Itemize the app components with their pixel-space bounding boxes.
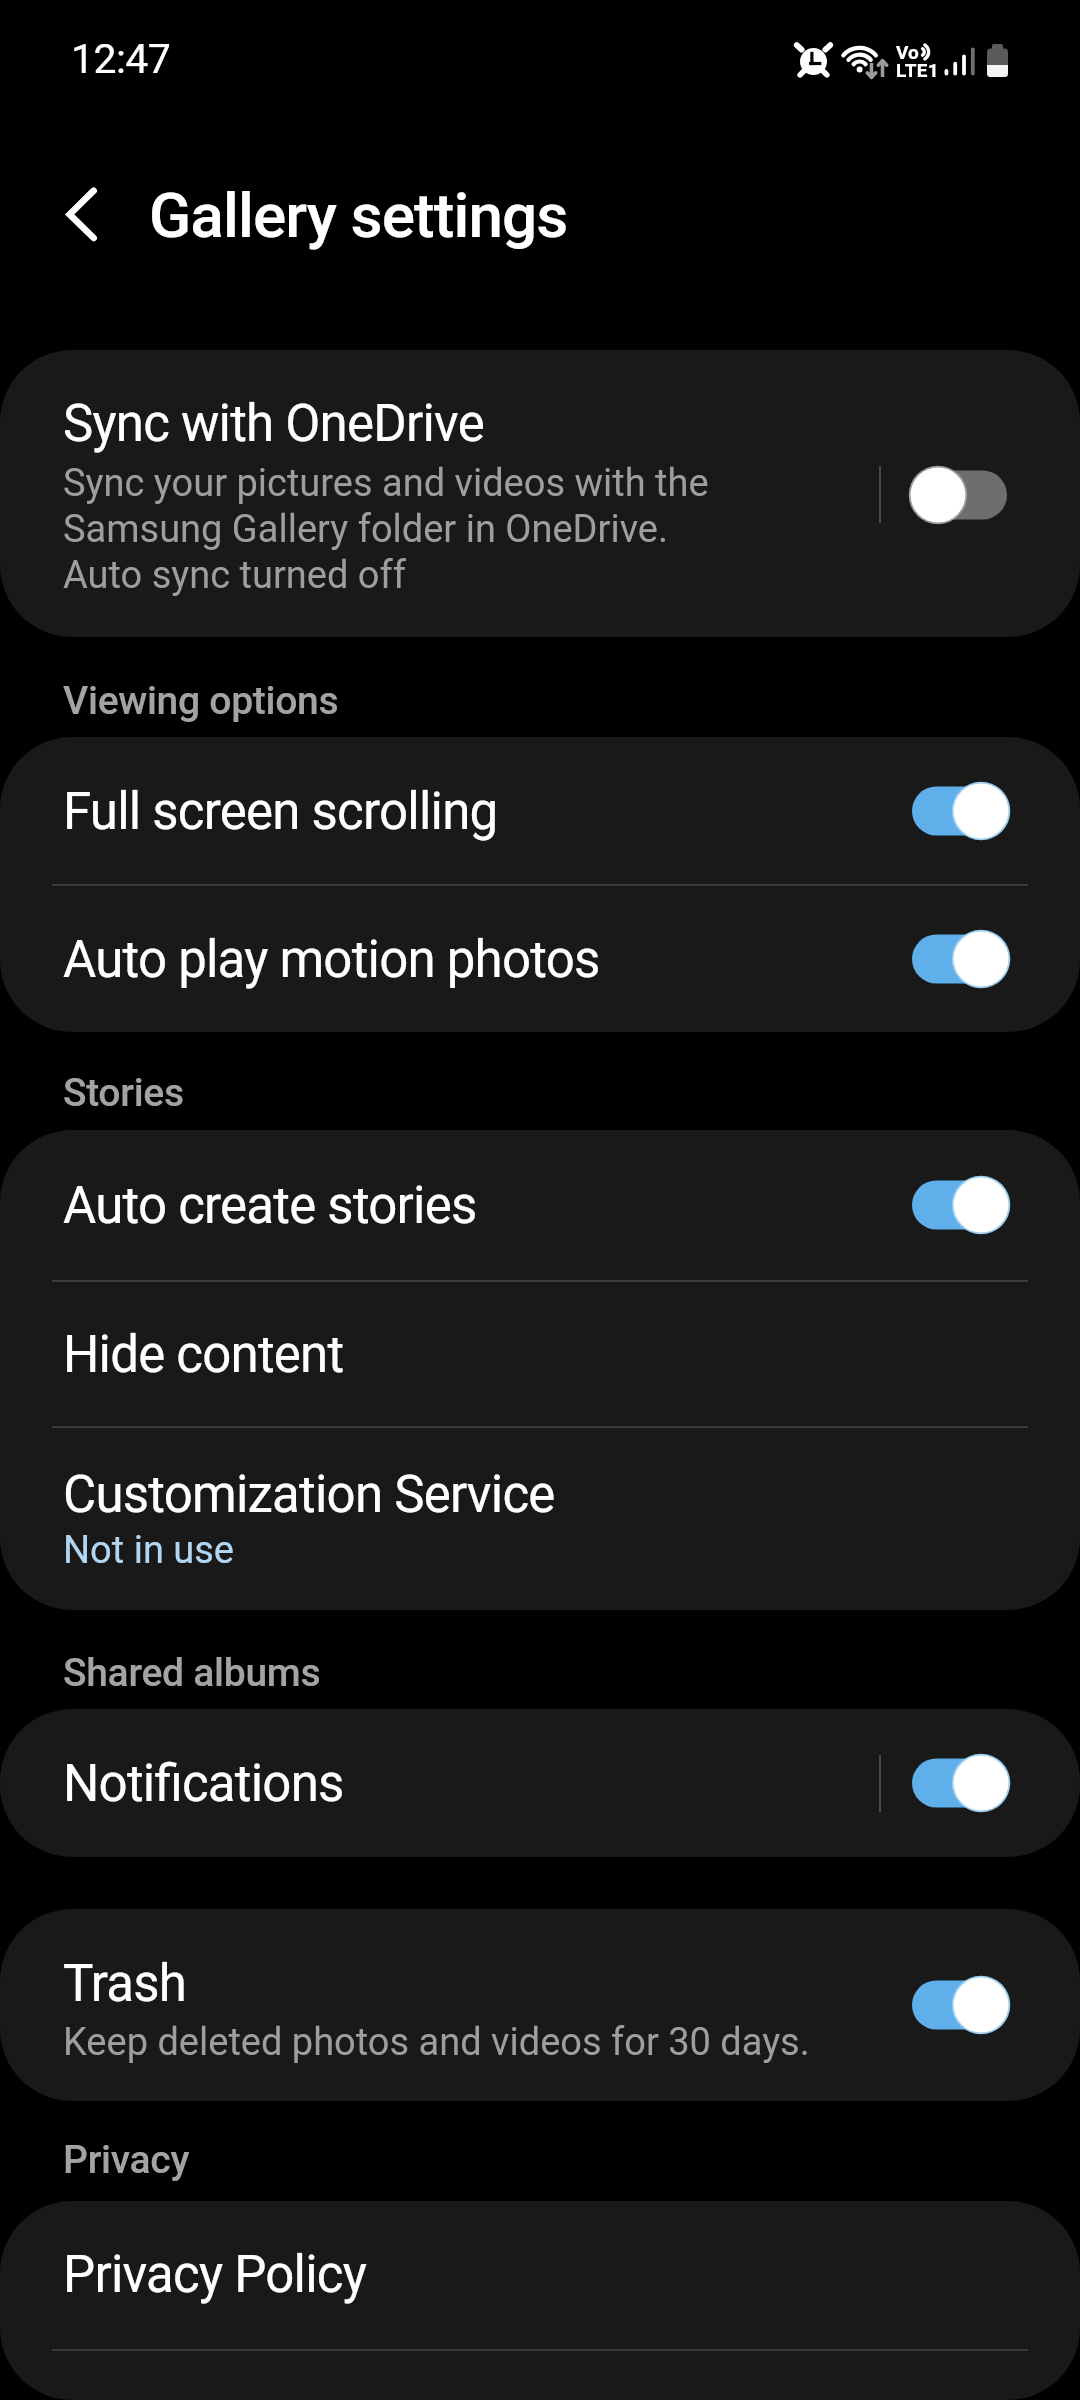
- button[interactable]: On: [901, 930, 1008, 988]
- button[interactable]: Navigate up: [36, 168, 128, 260]
- staticText: Privacy Policy: [63, 2245, 367, 2305]
- button[interactable]: Full screen scrolling: [0, 737, 1080, 884]
- staticText: Stories: [63, 1070, 184, 1116]
- staticText: Keep deleted photos and videos for 30 da…: [63, 2019, 810, 2065]
- staticText: LTE1: [896, 59, 939, 81]
- staticText: Auto create stories: [63, 1176, 477, 1236]
- staticText: Sync your pictures and videos with the S…: [63, 460, 709, 598]
- staticText: Trash: [63, 1954, 187, 2014]
- button[interactable]: Hide content: [0, 1281, 1080, 1427]
- staticText: Viewing options: [63, 678, 339, 724]
- button[interactable]: Trash: [0, 1909, 1080, 2101]
- button[interactable]: Off: [901, 466, 1008, 524]
- staticText: 12:47: [71, 35, 171, 83]
- button[interactable]: Notifications: [0, 1709, 1080, 1857]
- button[interactable]: Auto create stories: [0, 1130, 1080, 1280]
- staticText: Notifications: [63, 1754, 344, 1814]
- button[interactable]: On: [901, 782, 1008, 840]
- staticText: Vo: [896, 41, 919, 63]
- staticText: Privacy: [63, 2137, 190, 2183]
- staticText: Not in use: [63, 1528, 234, 1573]
- staticText: Auto play motion photos: [63, 930, 600, 990]
- button[interactable]: Customization Service: [0, 1427, 1080, 1610]
- button[interactable]: On: [901, 1176, 1008, 1234]
- staticText: Gallery settings: [149, 179, 568, 252]
- staticText: Hide content: [63, 1325, 344, 1385]
- staticText: Sync with OneDrive: [63, 394, 484, 454]
- staticText: Customization Service: [63, 1465, 555, 1525]
- button[interactable]: On: [901, 1976, 1008, 2034]
- staticText: Full screen scrolling: [63, 782, 498, 842]
- button[interactable]: Privacy Policy: [0, 2201, 1080, 2347]
- button[interactable]: Auto play motion photos: [0, 885, 1080, 1032]
- staticText: Shared albums: [63, 1650, 321, 1696]
- button[interactable]: On: [901, 1754, 1008, 1812]
